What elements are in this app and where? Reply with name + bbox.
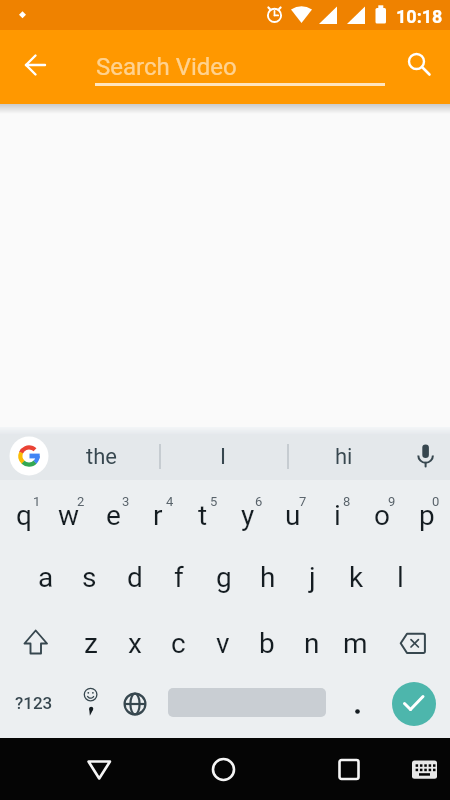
staticText: r [153,499,163,532]
button[interactable]: h [245,546,290,608]
staticText: 8 [343,494,351,509]
button[interactable]: q [1,484,46,546]
staticText: 9 [388,494,396,509]
button[interactable]: g [201,546,246,608]
staticText: 7 [299,494,307,509]
staticText: 0 [432,494,440,509]
staticText: 2 [77,494,85,509]
button[interactable]: a [23,546,68,608]
button[interactable] [75,746,123,794]
staticText: k [349,561,364,594]
button[interactable] [199,746,247,794]
button[interactable]: o [359,484,404,546]
button[interactable]: y [225,484,270,546]
staticText: w [58,499,80,532]
staticText: f [174,561,184,594]
staticText: a [38,561,54,594]
button[interactable]: l [378,546,423,608]
button[interactable]: b [244,612,289,674]
button[interactable] [325,746,373,794]
button[interactable]: the [51,432,151,482]
button[interactable]: s [67,546,112,608]
button[interactable]: ?123 [5,672,63,734]
staticText: p [419,499,435,532]
staticText: 6 [255,494,263,509]
button[interactable]: v [200,612,245,674]
staticText: 1 [33,494,41,509]
button[interactable] [394,40,444,88]
button[interactable] [0,30,450,104]
staticText: v [216,627,230,660]
staticText: j [309,561,316,594]
button[interactable]: t [180,484,225,546]
staticText: s [82,561,97,594]
staticText: u [285,499,301,532]
staticText: g [216,561,232,594]
button[interactable]: n [289,612,334,674]
staticText: i [334,499,341,532]
staticText: 4 [166,494,174,509]
staticText: z [84,627,98,660]
button[interactable]: r [135,484,180,546]
staticText: q [16,499,32,532]
button[interactable] [12,42,58,88]
button[interactable] [389,611,439,673]
staticText: l [397,561,404,594]
button[interactable] [11,611,61,673]
staticText: m [343,627,368,660]
button[interactable]: w [46,484,91,546]
staticText: b [259,627,275,660]
staticText: Search Video [96,53,237,81]
button[interactable] [112,672,157,734]
button[interactable] [402,434,448,480]
staticText: 3 [122,494,130,509]
staticText: y [241,499,255,532]
staticText: c [171,627,186,660]
button[interactable]: d [112,546,157,608]
staticText: ?123 [15,693,53,713]
button[interactable]: u [270,484,315,546]
button[interactable] [6,434,52,480]
button[interactable]: k [334,546,379,608]
staticText: o [374,499,390,532]
staticText: 5 [210,494,218,509]
button[interactable]: I [173,432,273,482]
button[interactable]: p [404,484,449,546]
button[interactable] [68,672,113,734]
staticText: the [86,444,117,470]
button[interactable]: i [315,484,360,546]
staticText: I [220,444,226,470]
button[interactable]: x [112,612,157,674]
staticText: x [128,627,142,660]
staticText: n [304,627,320,660]
staticText: e [106,499,121,532]
staticText: t [198,499,208,532]
button[interactable]: z [68,612,113,674]
button[interactable]: j [290,546,335,608]
staticText: h [260,561,276,594]
staticText: hi [335,444,353,470]
staticText: 10:18 [396,6,443,27]
button[interactable]: hi [299,432,389,482]
staticText: d [127,561,143,594]
button[interactable]: c [156,612,201,674]
button[interactable]: m [333,612,378,674]
button[interactable] [397,746,445,794]
button[interactable]: e [91,484,136,546]
button[interactable]: f [156,546,201,608]
button[interactable] [392,682,436,726]
